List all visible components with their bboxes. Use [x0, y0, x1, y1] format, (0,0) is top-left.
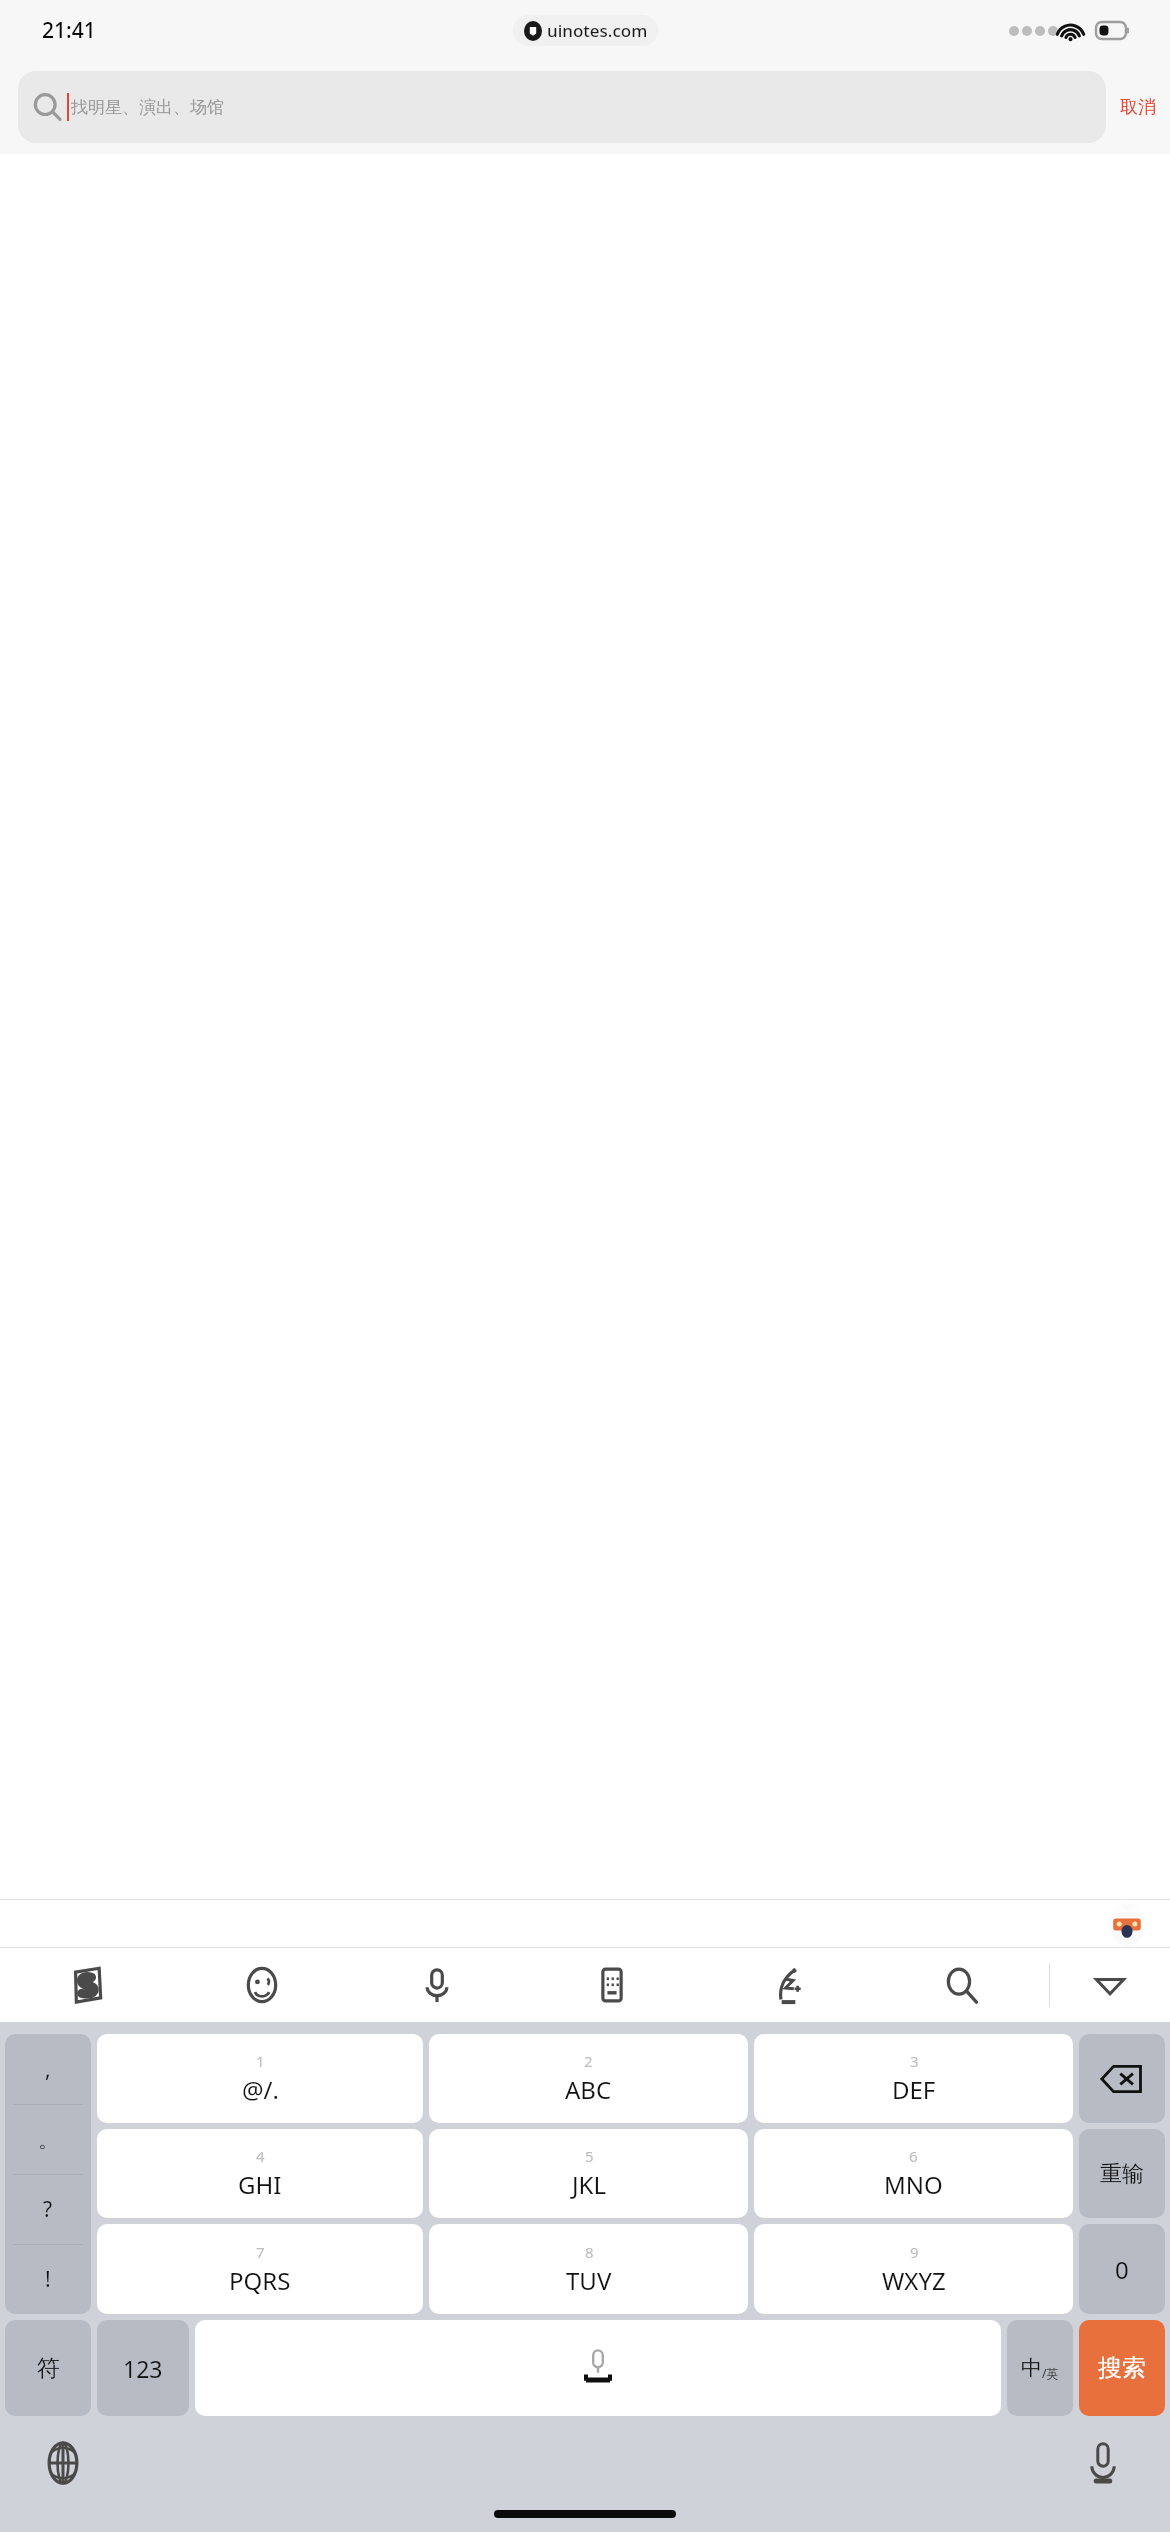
- button[interactable]: 6: [754, 2129, 1073, 2218]
- button[interactable]: 中: [1007, 2320, 1073, 2416]
- staticText: 2: [584, 2051, 593, 2071]
- button[interactable]: 8: [429, 2224, 748, 2314]
- button[interactable]: 找明星、演出、场馆: [18, 71, 1106, 143]
- staticText: WXYZ: [882, 2264, 946, 2297]
- staticText: 9: [910, 2242, 919, 2262]
- staticText: 1: [256, 2051, 265, 2071]
- button[interactable]: Voice input: [349, 1948, 524, 2022]
- staticText: ?: [43, 2195, 53, 2224]
- button[interactable]: Sogou mascot: [1104, 1901, 1150, 1947]
- staticText: JKL: [572, 2168, 606, 2201]
- button[interactable]: Keyboard layout: [524, 1948, 699, 2022]
- button[interactable]: 5: [429, 2129, 748, 2218]
- button[interactable]: 7: [97, 2224, 423, 2314]
- button[interactable]: 123: [97, 2320, 189, 2416]
- button[interactable]: 重输: [1079, 2129, 1165, 2218]
- staticText: 123: [123, 2353, 163, 2384]
- staticText: 7: [256, 2242, 265, 2262]
- button[interactable]: 2: [429, 2034, 748, 2123]
- button[interactable]: 3: [754, 2034, 1073, 2123]
- staticText: 找明星、演出、场馆: [71, 97, 224, 118]
- button[interactable]: Handwriting: [699, 1948, 874, 2022]
- staticText: 21:41: [42, 16, 96, 45]
- staticText: 。: [38, 2127, 59, 2153]
- staticText: DEF: [892, 2073, 936, 2106]
- staticText: 6: [909, 2146, 918, 2166]
- staticText: @/.: [242, 2073, 279, 2106]
- staticText: 重输: [1100, 2160, 1144, 2188]
- staticText: MNO: [884, 2168, 943, 2201]
- staticText: 4: [256, 2146, 265, 2166]
- staticText: uinotes.com: [547, 19, 648, 42]
- staticText: 0: [1115, 2253, 1129, 2286]
- button[interactable]: ,: [5, 2034, 91, 2314]
- button[interactable]: 4: [97, 2129, 423, 2218]
- button[interactable]: Change language: [38, 2438, 88, 2488]
- staticText: 搜索: [1098, 2353, 1146, 2383]
- button[interactable]: 0: [1079, 2224, 1165, 2314]
- button[interactable]: Backspace: [1079, 2034, 1165, 2123]
- staticText: 8: [585, 2242, 594, 2262]
- button[interactable]: Hide keyboard: [1050, 1948, 1170, 2022]
- button[interactable]: 搜索: [1079, 2320, 1165, 2416]
- button[interactable]: 1: [97, 2034, 423, 2123]
- staticText: GHI: [238, 2168, 282, 2201]
- staticText: TUV: [566, 2264, 612, 2297]
- button[interactable]: 符: [5, 2320, 91, 2416]
- button[interactable]: 取消: [1120, 96, 1156, 119]
- button[interactable]: 9: [754, 2224, 1073, 2314]
- staticText: PQRS: [229, 2264, 291, 2297]
- staticText: 3: [910, 2051, 919, 2071]
- staticText: 符: [37, 2354, 60, 2383]
- button[interactable]: Voice input: [1078, 2438, 1128, 2488]
- staticText: 5: [585, 2146, 594, 2166]
- staticText: 中: [1021, 2355, 1042, 2381]
- button[interactable]: Search: [874, 1948, 1049, 2022]
- button[interactable]: Sogou: [0, 1948, 174, 2022]
- staticText: 取消: [1120, 96, 1156, 119]
- staticText: /英: [1042, 2365, 1059, 2381]
- staticText: ,: [45, 2055, 51, 2084]
- button[interactable]: Emoji: [174, 1948, 349, 2022]
- staticText: !: [45, 2265, 51, 2294]
- staticText: ABC: [565, 2073, 612, 2106]
- button[interactable]: Space: [195, 2320, 1001, 2416]
